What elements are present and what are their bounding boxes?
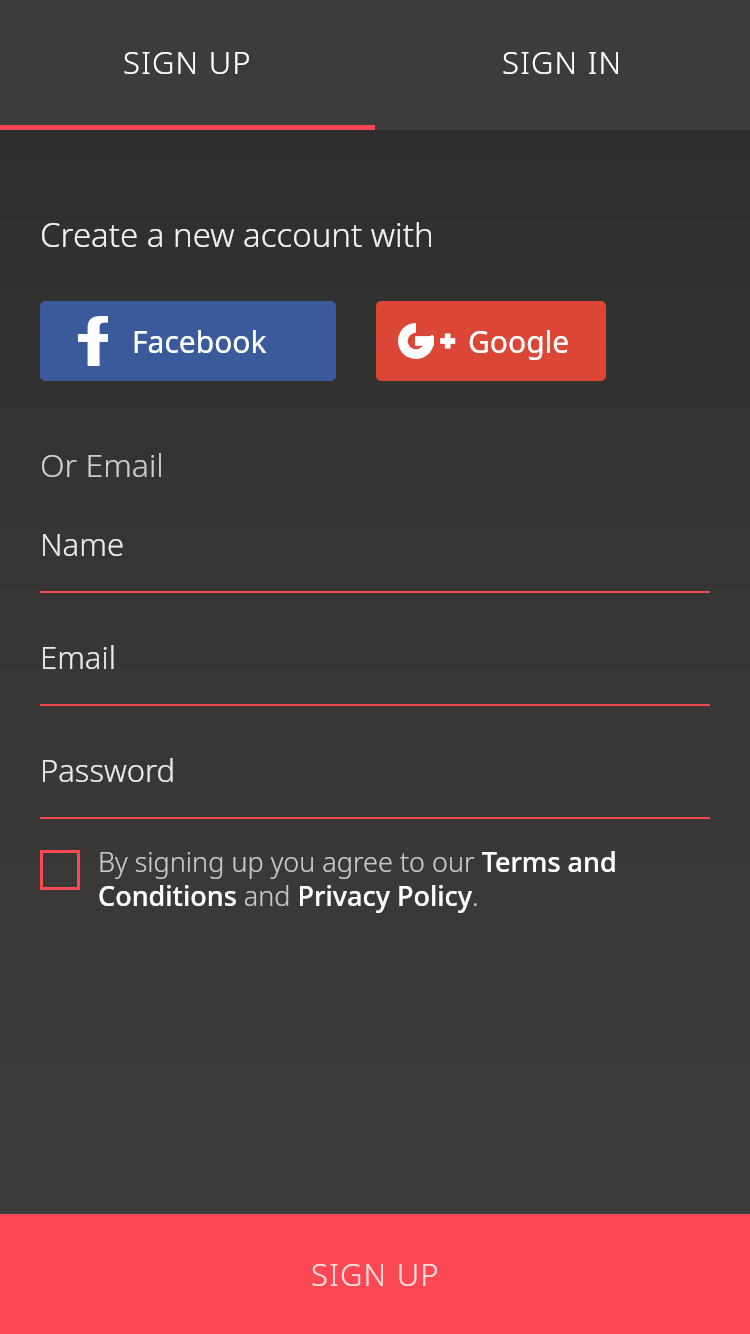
- staticText: SIGN UP: [123, 41, 252, 83]
- staticText: Email: [40, 636, 116, 678]
- staticText: Facebook: [132, 321, 267, 362]
- staticText: SIGN UP: [311, 1253, 440, 1295]
- button[interactable]: Google: [376, 301, 606, 381]
- button[interactable]: By signing up you agree to our Terms and…: [98, 843, 710, 914]
- staticText: Create a new account with: [40, 212, 434, 257]
- button[interactable]: Email: [40, 636, 710, 706]
- staticText: SIGN IN: [502, 41, 623, 83]
- staticText: Or Email: [40, 443, 164, 487]
- staticText: Name: [40, 523, 125, 565]
- button[interactable]: Facebook: [40, 301, 336, 381]
- button[interactable]: Password: [40, 749, 710, 819]
- button[interactable]: Agree to Terms and Conditions: [40, 850, 80, 890]
- button[interactable]: Name: [40, 523, 710, 593]
- button[interactable]: SIGN IN: [375, 0, 750, 130]
- button[interactable]: SIGN UP: [0, 0, 375, 130]
- button[interactable]: SIGN UP: [0, 1214, 750, 1334]
- staticText: Password: [40, 749, 176, 791]
- staticText: Google: [468, 321, 570, 362]
